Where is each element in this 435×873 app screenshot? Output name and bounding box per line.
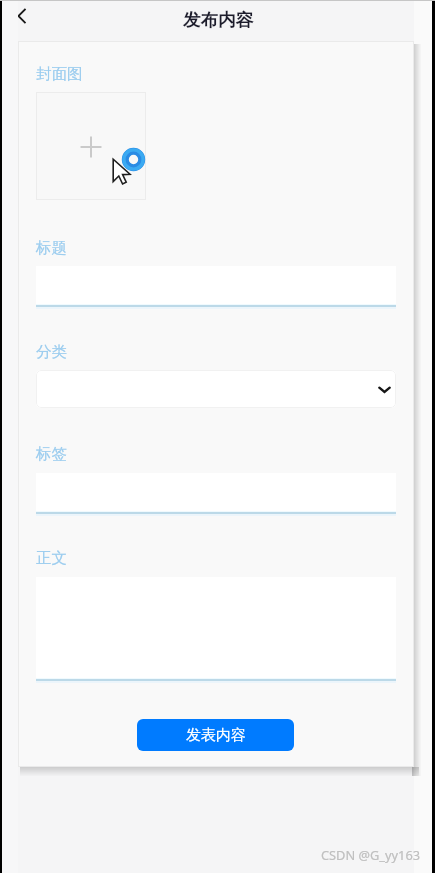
- staticText: 发表内容: [186, 726, 246, 745]
- staticText: 封面图: [36, 64, 83, 84]
- staticText: 分类: [36, 342, 67, 362]
- button[interactable]: 发表内容: [137, 719, 294, 751]
- staticText: 正文: [36, 548, 67, 568]
- button[interactable]: Back: [4, 0, 40, 34]
- staticText: 标题: [36, 238, 67, 258]
- staticText: CSDN @G_yy163: [321, 846, 421, 863]
- button[interactable]: Category select: [36, 370, 396, 408]
- button[interactable]: Add cover image: [36, 92, 146, 200]
- staticText: 标签: [36, 444, 67, 464]
- staticText: 发布内容: [183, 9, 253, 31]
